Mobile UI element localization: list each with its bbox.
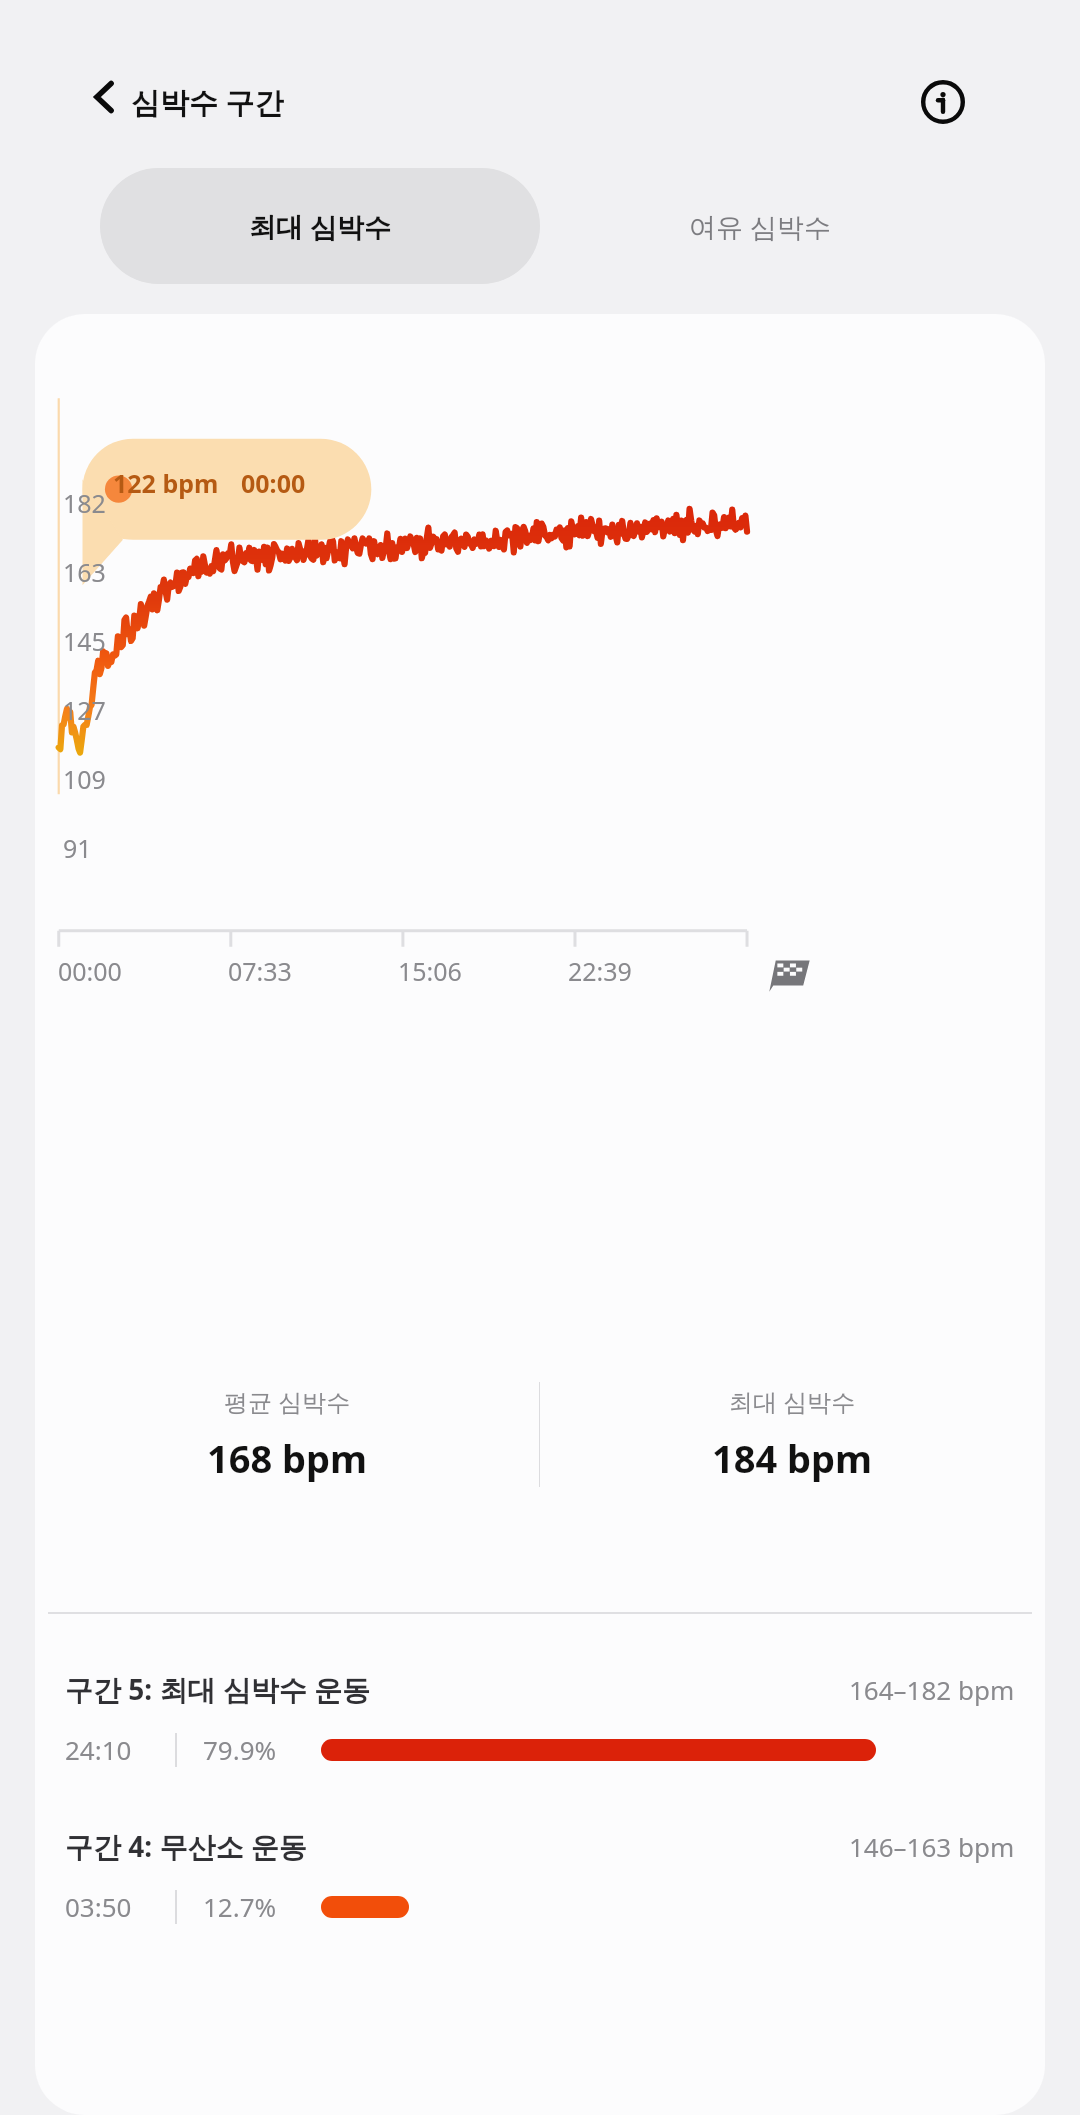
staticText: 22:39 — [568, 954, 632, 988]
staticText: 심박수 구간 — [131, 82, 284, 122]
staticText: 최대 심박수 — [729, 1385, 856, 1418]
staticText: 07:33 — [228, 954, 292, 988]
staticText: 구간 4: 무산소 운동 — [65, 1827, 307, 1865]
staticText: 15:06 — [398, 954, 462, 988]
staticText: 12.7% — [203, 1889, 277, 1924]
staticText: 00:00 — [241, 466, 306, 500]
staticText: 127 — [63, 693, 106, 727]
staticText: 168 bpm — [207, 1432, 368, 1484]
button[interactable]: 구간 5: 최대 심박수 운동 — [35, 1670, 1045, 1767]
staticText: 146–163 bpm — [849, 1829, 1015, 1864]
button[interactable]: 여유 심박수 — [540, 168, 980, 284]
button[interactable]: 최대 심박수 — [100, 168, 540, 284]
staticText: 구간 5: 최대 심박수 운동 — [65, 1670, 371, 1708]
staticText: 24:10 — [65, 1732, 132, 1767]
staticText: 평균 심박수 — [224, 1385, 351, 1418]
staticText: 91 — [63, 831, 92, 865]
staticText: 여유 심박수 — [689, 208, 832, 245]
staticText: 163 — [63, 555, 106, 589]
button[interactable]: 구간 4: 무산소 운동 — [35, 1827, 1045, 1924]
staticText: 00:00 — [58, 954, 122, 988]
staticText: 최대 심박수 — [249, 208, 392, 245]
staticText: 109 — [63, 762, 106, 796]
staticText: 03:50 — [65, 1889, 132, 1924]
staticText: 164–182 bpm — [849, 1672, 1015, 1707]
button[interactable]: Information — [908, 67, 978, 137]
button[interactable]: Back — [70, 62, 140, 132]
staticText: 145 — [63, 624, 106, 658]
staticText: 122 bpm — [113, 466, 219, 500]
staticText: 184 bpm — [712, 1432, 873, 1484]
staticText: 79.9% — [203, 1732, 277, 1767]
staticText: 182 — [63, 486, 106, 520]
